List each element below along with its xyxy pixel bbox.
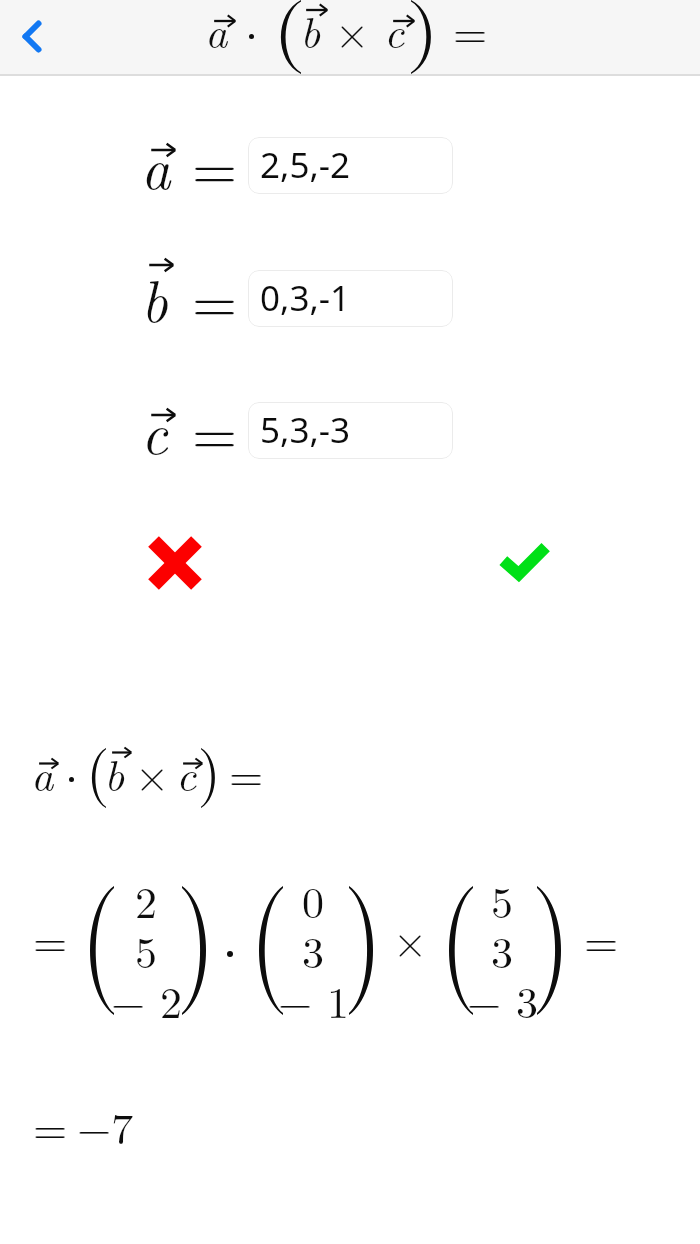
staticText: × [135,741,170,803]
button[interactable]: 5,3,-3 [248,402,453,459]
staticText: = [229,741,264,803]
button[interactable]: 2,5,-2 [248,137,453,194]
button[interactable]: 0,3,-1 [248,270,453,327]
staticText: −7 [77,1094,134,1156]
staticText: 0 [302,868,324,930]
staticText: = [192,257,238,339]
staticText: 0,3,-1 [260,274,351,322]
staticText: 2 [135,868,157,930]
staticText: = [192,389,238,471]
staticText: 3 [491,918,513,980]
staticText: 3 [302,918,324,980]
staticText: c [384,0,405,60]
staticText: b [300,0,321,60]
staticText: c [176,741,197,803]
staticText: = [453,0,488,60]
staticText: a [205,0,228,60]
staticText: × [335,0,370,60]
button[interactable]: Calculate [490,534,560,604]
staticText: b [104,741,125,803]
staticText: 2,5,-2 [260,141,351,189]
staticText: 5 [491,868,513,930]
button[interactable]: Back [0,4,64,68]
staticText: b [141,257,168,339]
staticText: − 2 [111,968,182,1030]
staticText: = [584,907,619,969]
staticText: a [31,741,54,803]
staticText: c [141,389,168,471]
staticText: − 3 [467,968,538,1030]
staticText: 5,3,-3 [260,406,351,454]
button[interactable]: Clear inputs [143,531,207,595]
staticText: = [33,907,68,969]
staticText: 5 [135,918,157,980]
staticText: = [192,124,238,206]
staticText: a [141,124,171,206]
staticText: = [33,1094,68,1156]
staticText: − 1 [278,968,349,1030]
staticText: × [393,907,428,969]
